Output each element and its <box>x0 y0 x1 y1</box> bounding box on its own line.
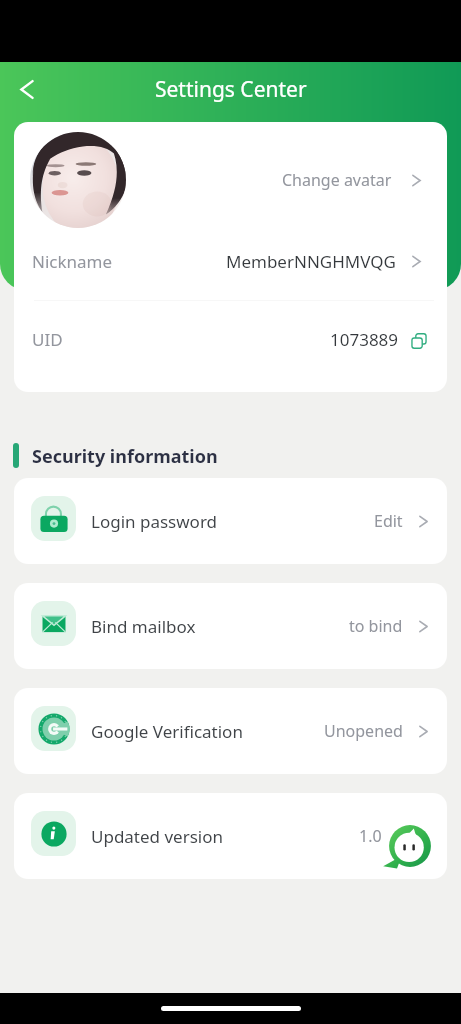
staticText: to bind <box>349 615 403 637</box>
staticText: Nickname <box>32 250 113 273</box>
button[interactable]: Google Verification <box>14 688 447 774</box>
staticText: 1073889 <box>330 328 399 351</box>
button[interactable]: Updated version <box>14 793 447 879</box>
staticText: Change avatar <box>282 169 392 191</box>
staticText: Edit <box>374 510 403 532</box>
staticText: Unopened <box>324 720 403 742</box>
staticText: Login password <box>91 510 218 533</box>
button[interactable]: Nickname <box>14 238 447 284</box>
staticText: UID <box>32 328 63 351</box>
button[interactable]: Bind mailbox <box>14 583 447 669</box>
staticText: Security information <box>32 444 218 469</box>
staticText: Updated version <box>91 825 224 848</box>
staticText: 1.0 <box>359 825 382 847</box>
button[interactable]: Back <box>2 65 50 113</box>
staticText: Settings Center <box>155 75 307 104</box>
button[interactable]: Customer support chat <box>387 823 433 869</box>
button[interactable]: Copy UID <box>408 330 430 352</box>
staticText: MemberNNGHMVQG <box>226 250 396 273</box>
button[interactable]: Login password <box>14 478 447 564</box>
button[interactable]: Change avatar <box>14 122 447 238</box>
staticText: Bind mailbox <box>91 615 196 638</box>
staticText: Google Verification <box>91 720 243 743</box>
